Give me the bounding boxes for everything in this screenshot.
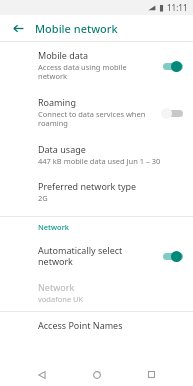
button[interactable]: Mobile data — [0, 42, 193, 89]
button[interactable]: Back — [9, 19, 27, 37]
staticText: Network — [38, 281, 75, 293]
staticText: Connect to data services when roaming — [38, 109, 155, 129]
button[interactable]: Data usage — [0, 136, 193, 173]
button[interactable]: Automatically select network — [0, 237, 193, 274]
staticText: Automatically select network — [38, 244, 155, 267]
staticText: 2G — [38, 193, 48, 203]
button[interactable]: Preferred network type — [0, 173, 193, 210]
staticText: Data usage — [38, 143, 86, 155]
button[interactable]: Off — [161, 106, 185, 120]
staticText: Network — [38, 222, 69, 232]
staticText: Access Point Names — [38, 319, 123, 331]
staticText: Roaming — [38, 96, 76, 108]
staticText: Access data using mobile network — [38, 62, 155, 82]
staticText: Preferred network type — [38, 180, 137, 192]
button[interactable]: Roaming — [0, 89, 193, 136]
button[interactable]: Recents — [138, 363, 164, 386]
staticText: Mobile network — [35, 21, 118, 36]
staticText: 11:11 — [167, 2, 188, 13]
button[interactable]: Home — [84, 363, 110, 386]
button[interactable]: Network — [0, 274, 193, 311]
button[interactable]: On — [161, 249, 185, 263]
staticText: Mobile data — [38, 49, 89, 61]
button[interactable]: Back — [29, 363, 55, 386]
button[interactable]: On — [161, 59, 185, 73]
staticText: vodafone UK — [38, 294, 84, 304]
staticText: 447 kB mobile data used Jun 1 – 30 — [38, 156, 161, 166]
button[interactable]: Access Point Names — [0, 312, 193, 338]
